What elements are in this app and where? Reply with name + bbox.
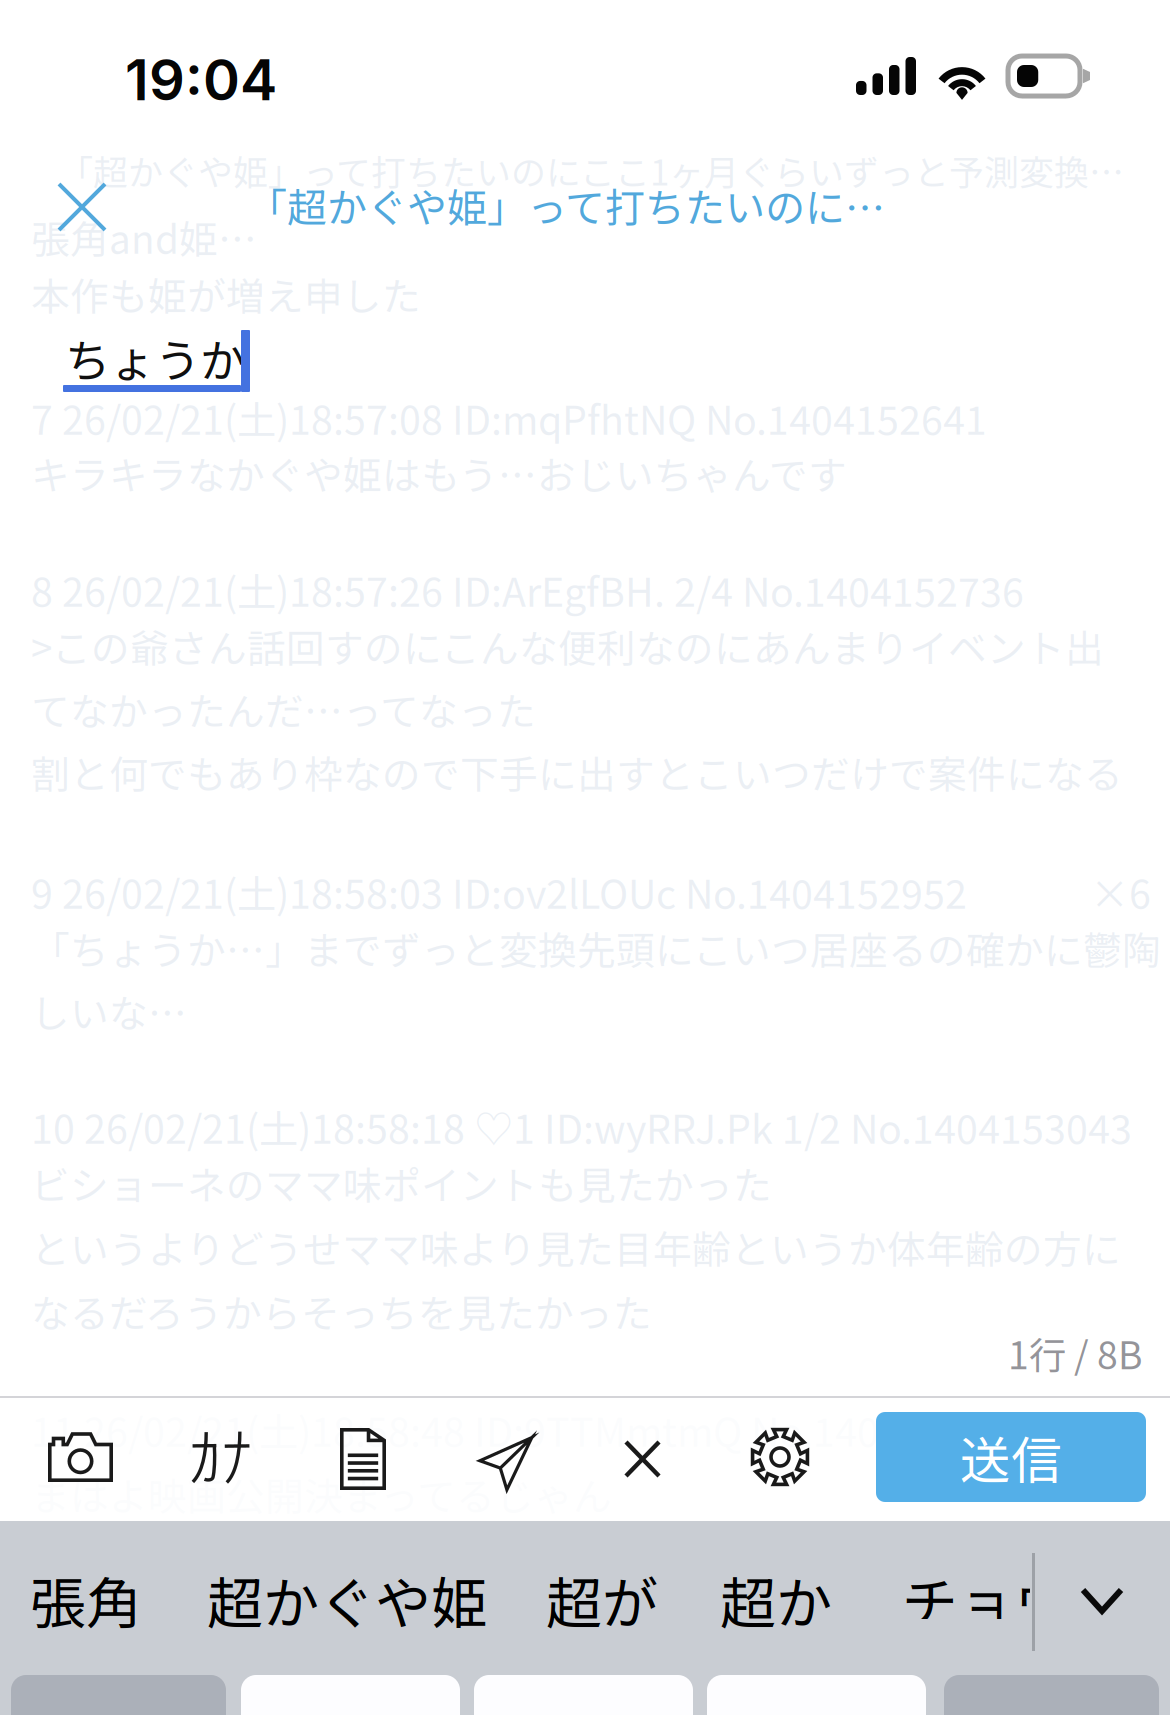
- staticText: 超かぐや姫: [207, 1559, 487, 1640]
- button[interactable]: Settings: [723, 1400, 837, 1514]
- staticText: というよりどうせママ味より見た目年齢というか体年齢の方に: [31, 1219, 1121, 1275]
- button[interactable]: Quote: [448, 1405, 564, 1522]
- staticText: しいな…: [31, 983, 187, 1039]
- staticText: 7 26/02/21(土)18:57:08 ID:mqPfhtNQ No.140…: [31, 389, 987, 446]
- staticText: >この爺さん話回すのにこんな便利なのにあんまりイベント出: [31, 618, 1104, 674]
- staticText: ちょうか: [65, 325, 245, 391]
- staticText: てなかったんだ…ってなった: [31, 681, 536, 737]
- staticText: 張角: [30, 1559, 142, 1640]
- staticText: ビショーネのママ味ポイントも見たかった: [31, 1155, 772, 1211]
- button[interactable]: 超かぐや姫: [207, 1559, 487, 1640]
- button[interactable]: Close: [37, 162, 127, 252]
- staticText: まはよ映画公開決まってるじゃん: [31, 1466, 612, 1522]
- button[interactable]: 超か: [720, 1559, 832, 1640]
- button[interactable]: Kana input: [166, 1404, 276, 1509]
- staticText: ×6: [1090, 863, 1151, 920]
- staticText: 送信: [960, 1420, 1062, 1494]
- button[interactable]: Hide predictions: [1052, 1559, 1152, 1642]
- staticText: なるだろうからそっちを見たかった: [31, 1283, 652, 1339]
- staticText: 割と何でもあり枠なので下手に出すとこいつだけで案件になる: [31, 744, 1123, 800]
- button[interactable]: Template: [312, 1400, 414, 1518]
- staticText: キラキラなかぐや姫はもう…おじいちゃんです: [31, 445, 847, 501]
- button[interactable]: 張角: [30, 1559, 142, 1640]
- button[interactable]: Camera: [22, 1406, 139, 1508]
- staticText: 19:04: [125, 46, 277, 114]
- button[interactable]: Clear: [594, 1410, 691, 1508]
- staticText: 張角and姫…: [31, 209, 257, 265]
- staticText: 10 26/02/21(土)18:58:18 ♡1 ID:wyRRJ.Pk 1/…: [31, 1098, 1132, 1155]
- staticText: 11 26/02/21(土)18:58:48 ID:9TTMmtmQ No.14…: [31, 1401, 1033, 1458]
- staticText: 9 26/02/21(土)18:58:03 ID:ov2lLOUc No.140…: [31, 863, 967, 920]
- staticText: チョウ: [902, 1559, 1070, 1640]
- button[interactable]: チョウ: [902, 1559, 1030, 1619]
- staticText: 8 26/02/21(土)18:57:26 ID:ArEgfBH. 2/4 No…: [31, 561, 1024, 618]
- staticText: 1行 / 8B: [1008, 1326, 1143, 1380]
- staticText: 「ちょうか…」までずっと変換先頭にこいつ居座るの確かに鬱陶: [31, 920, 1161, 976]
- staticText: 本作も姫が増え申した: [31, 266, 421, 322]
- staticText: 「超かぐや姫」って打ちたいのに…: [247, 176, 885, 234]
- button[interactable]: 超が: [546, 1559, 658, 1640]
- staticText: 「超かぐや姫」って打ちたいのにここ1ヶ月ぐらいずっと予測変換…: [58, 145, 1124, 196]
- staticText: 超が: [546, 1559, 658, 1640]
- button[interactable]: 送信: [876, 1412, 1146, 1502]
- staticText: 超か: [720, 1559, 832, 1640]
